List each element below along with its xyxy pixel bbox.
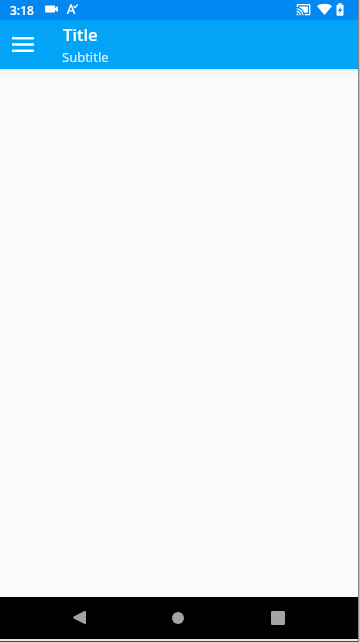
button[interactable]: Open navigation menu [1, 23, 44, 66]
staticText: Subtitle [62, 48, 109, 66]
staticText: Title [63, 23, 98, 46]
button[interactable]: Back [59, 597, 99, 638]
staticText: 3:18 [10, 2, 34, 18]
button[interactable]: Home [158, 597, 198, 638]
button[interactable]: Recent apps [258, 597, 298, 638]
